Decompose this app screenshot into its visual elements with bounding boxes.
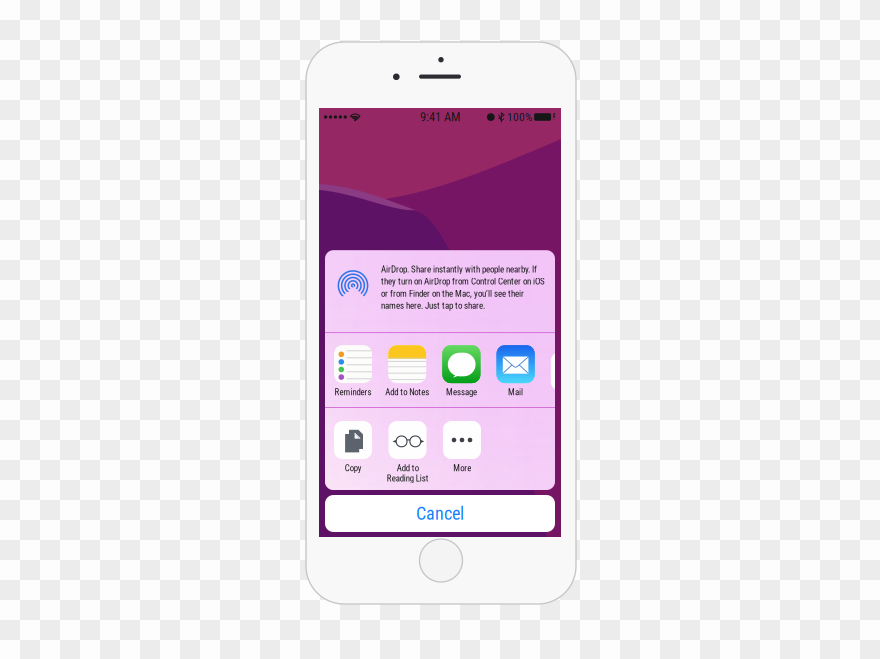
staticText: More	[453, 463, 471, 473]
button[interactable]: Add to Notes	[388, 345, 426, 397]
staticText: Copy	[344, 463, 361, 473]
staticText: Cancel	[416, 503, 464, 524]
staticText: names here. Just tap to share.	[381, 300, 485, 311]
staticText: Reminders	[334, 387, 371, 397]
staticText: Mail	[508, 387, 523, 397]
staticText: Add to Notes	[385, 387, 429, 397]
staticText: they turn on AirDrop from Control Center…	[381, 276, 545, 287]
staticText: Add to Reading List	[386, 463, 428, 484]
staticText: 9:41 AM	[420, 110, 460, 124]
button[interactable]: Reminders	[334, 345, 372, 397]
button[interactable]: Message	[442, 345, 480, 397]
staticText: AirDrop. Share instantly with people nea…	[381, 264, 537, 275]
button[interactable]: Add to Reading List	[388, 421, 426, 484]
staticText: or from Finder on the Mac, you’ll see th…	[381, 288, 524, 299]
button[interactable]: Copy	[334, 421, 372, 473]
button[interactable]: Mail	[497, 345, 535, 397]
staticText: 100%	[507, 110, 532, 124]
staticText: Message	[446, 387, 477, 397]
button[interactable]: More	[443, 421, 481, 473]
button[interactable]: Cancel	[325, 495, 555, 532]
button[interactable]: More apps	[551, 352, 589, 390]
